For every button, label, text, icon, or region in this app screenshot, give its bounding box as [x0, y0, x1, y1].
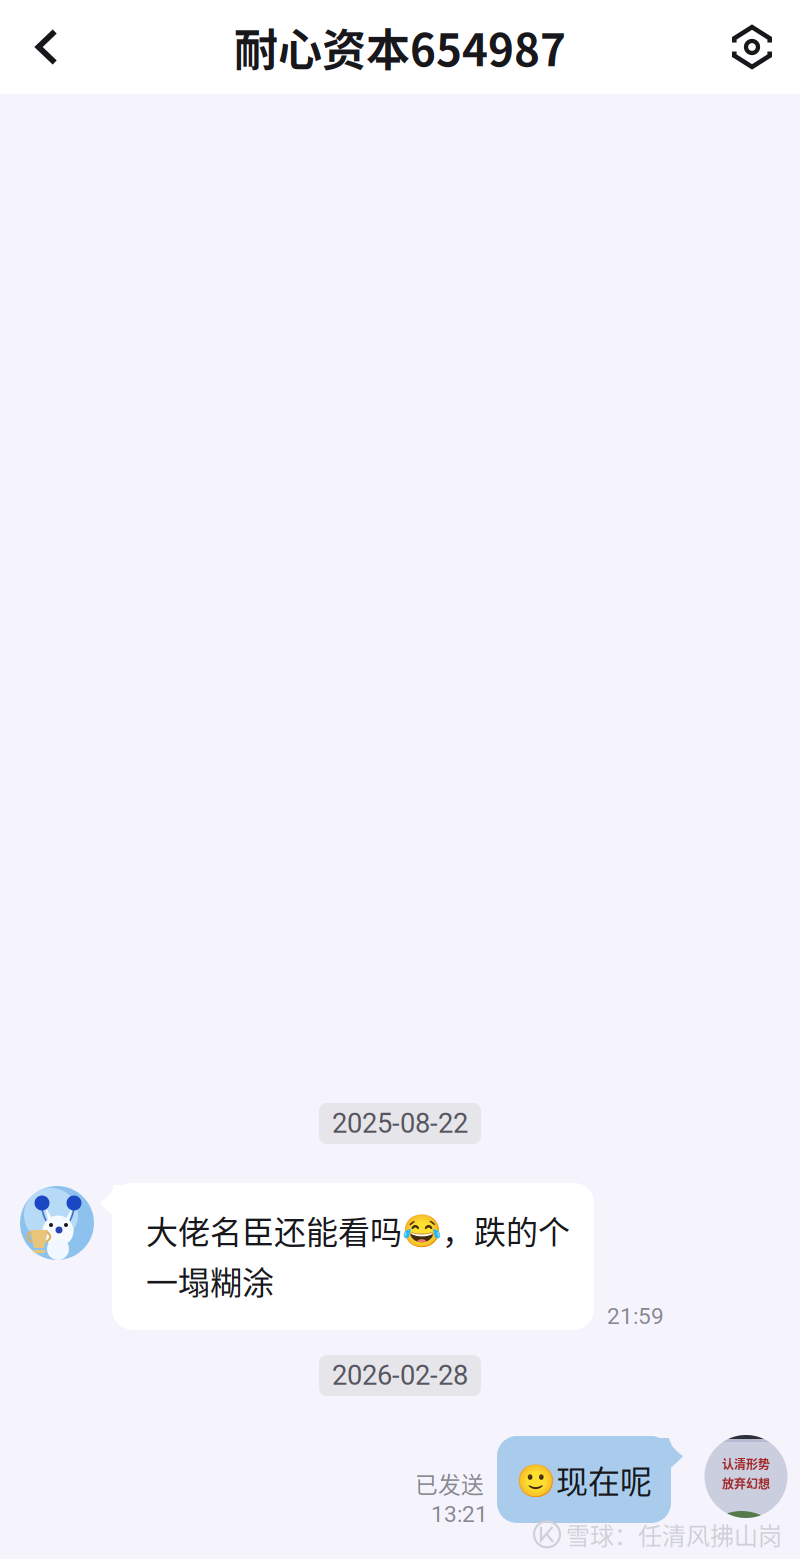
- button[interactable]: 耐心资本654987 的头像: [20, 1186, 94, 1260]
- staticText: 已发送: [415, 1467, 484, 1500]
- staticText: 雪球：任清风拂山岗: [566, 1517, 782, 1552]
- button[interactable]: 我的头像: [703, 1435, 789, 1518]
- staticText: 🙂现在呢: [516, 1456, 652, 1503]
- button[interactable]: Back: [0, 0, 94, 94]
- staticText: 耐心资本654987: [234, 15, 566, 79]
- staticText: 2026-02-28: [332, 1359, 468, 1391]
- staticText: 大佬名臣还能看吗😂，跌的个一塌糊涂: [146, 1207, 570, 1304]
- staticText: 13:21: [431, 1501, 488, 1528]
- staticText: 放弃幻想: [722, 1474, 770, 1492]
- staticText: 2025-08-22: [332, 1107, 468, 1139]
- button[interactable]: 🙂现在呢: [497, 1436, 671, 1523]
- staticText: 认清形势: [722, 1455, 770, 1472]
- button[interactable]: Settings: [704, 0, 800, 94]
- button[interactable]: 大佬名臣还能看吗😂，跌的个一塌糊涂: [112, 1183, 594, 1330]
- staticText: 21:59: [607, 1303, 664, 1330]
